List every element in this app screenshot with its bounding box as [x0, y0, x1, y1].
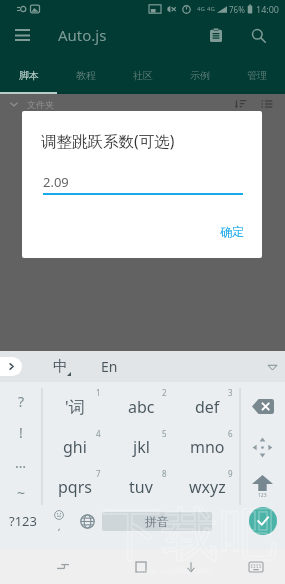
staticText: 中 [53, 357, 68, 376]
button[interactable]: Keyboard [243, 549, 269, 584]
staticText: '词 [65, 396, 85, 418]
button[interactable]: 中 [43, 351, 77, 382]
staticText: 8 [162, 468, 167, 479]
button[interactable]: 拼音 [102, 512, 212, 531]
staticText: ! [19, 423, 23, 442]
staticText: 示例 [190, 69, 210, 82]
button[interactable]: Expand toolbar [0, 357, 22, 376]
staticText: 14:00 [256, 3, 280, 15]
button[interactable]: jkl [108, 427, 174, 467]
button[interactable]: Language [72, 507, 102, 535]
button[interactable]: Emoji [46, 507, 72, 535]
button[interactable]: def [174, 386, 240, 427]
staticText: 1 [96, 387, 101, 398]
button[interactable]: Back [50, 549, 76, 584]
staticText: Auto.js [58, 25, 107, 45]
staticText: 2 [162, 387, 167, 398]
button[interactable]: ?123 [0, 507, 46, 535]
staticText: wxyz [189, 476, 226, 498]
staticText: www.xiazaiba.com [137, 565, 211, 577]
button[interactable]: abc [108, 386, 174, 427]
staticText: ?123 [9, 512, 37, 530]
staticText: ? [18, 392, 25, 411]
button[interactable]: ~ [0, 477, 42, 507]
button[interactable]: '词 [42, 386, 108, 427]
button[interactable]: Home [128, 549, 154, 584]
button[interactable]: En [93, 351, 125, 382]
staticText: 2.09 [43, 173, 69, 191]
button[interactable]: … [0, 447, 42, 477]
staticText: 9 [228, 468, 233, 479]
button[interactable]: mno [174, 427, 240, 467]
button[interactable]: Move cursor [240, 427, 285, 467]
staticText: , [58, 520, 61, 532]
button[interactable]: 确定 [202, 214, 262, 248]
staticText: mno [190, 436, 225, 458]
staticText: def [195, 396, 220, 418]
staticText: 4G [207, 5, 215, 13]
staticText: 社区 [133, 69, 153, 82]
staticText: 拼音 [145, 514, 169, 529]
staticText: ~ [17, 483, 26, 502]
button[interactable]: Hide [259, 354, 285, 380]
button[interactable]: Menu [0, 18, 44, 52]
staticText: 5 [162, 428, 167, 439]
staticText: … [15, 453, 27, 472]
staticText: jkl [133, 436, 150, 458]
button[interactable]: Search [238, 18, 278, 52]
staticText: 7 [96, 468, 101, 479]
staticText: tuv [129, 476, 153, 498]
staticText: 文件夹 [27, 99, 54, 110]
staticText: 76% [229, 4, 245, 15]
button[interactable]: Backspace [240, 386, 285, 427]
staticText: 调整跳跃系数(可选) [41, 130, 175, 151]
staticText: 确定 [220, 224, 244, 239]
staticText: 下载吧 [103, 498, 285, 584]
button[interactable]: ! [0, 417, 42, 447]
staticText: 6 [228, 428, 233, 439]
button[interactable]: wxyz [174, 467, 240, 507]
button[interactable]: ? [0, 386, 42, 417]
button[interactable]: Enter [240, 507, 285, 535]
button[interactable]: 管理 [228, 52, 285, 94]
staticText: 教程 [76, 69, 96, 82]
staticText: En [101, 357, 118, 376]
button[interactable]: 社区 [114, 52, 171, 94]
staticText: pqrs [58, 476, 92, 498]
button[interactable]: tuv [108, 467, 174, 507]
staticText: abc [128, 396, 155, 418]
staticText: 4G [197, 5, 205, 13]
staticText: 123 [258, 492, 267, 499]
button[interactable]: 教程 [57, 52, 114, 94]
button[interactable]: Logs [196, 18, 236, 52]
button[interactable]: Numbers [240, 467, 285, 507]
staticText: 4 [96, 428, 101, 439]
staticText: 管理 [247, 69, 267, 82]
button[interactable]: pqrs [42, 467, 108, 507]
button[interactable]: ghi [42, 427, 108, 467]
staticText: ghi [63, 436, 87, 458]
staticText: 3 [228, 387, 233, 398]
button[interactable]: Hide keyboard [178, 549, 204, 584]
button[interactable]: 脚本 [0, 52, 57, 94]
staticText: 脚本 [19, 69, 39, 82]
button[interactable]: 示例 [171, 52, 228, 94]
